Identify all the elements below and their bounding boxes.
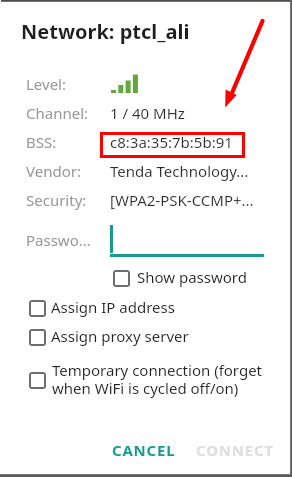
button[interactable]: Assign IP address [51,297,175,317]
staticText: c8:3a:35:7b:5b:91 [110,132,233,152]
staticText: Tenda Technology... [110,161,249,181]
button[interactable]: CANCEL [104,434,184,466]
staticText: Network: ptcl_ali [21,18,190,45]
staticText: [WPA2-PSK-CCMP+... [110,190,254,210]
button[interactable]: Temporary connection (forget when WiFi i… [52,360,263,399]
staticText: Level: [26,74,66,94]
staticText: Security: [26,190,87,210]
staticText: Temporary connection (forget when WiFi i… [52,360,263,399]
button[interactable]: Show password [113,270,130,287]
staticText: BSS: [26,132,57,152]
button[interactable]: CONNECT [188,434,282,466]
button[interactable]: Assign proxy server [51,326,189,346]
staticText: Channel: [26,103,89,123]
staticText: Show password [137,267,247,287]
button[interactable]: Assign proxy server [29,329,46,346]
button[interactable]: Show password [137,267,247,287]
staticText: CANCEL [112,440,176,460]
button[interactable]: Temporary connection [29,372,46,389]
button[interactable]: Assign IP address [29,300,46,317]
staticText: 1 / 40 MHz [110,103,185,123]
staticText: CONNECT [196,440,274,460]
staticText: Vendor: [26,161,81,181]
staticText: Assign proxy server [51,326,189,346]
staticText: Passwo… [26,230,91,250]
staticText: Assign IP address [51,297,175,317]
